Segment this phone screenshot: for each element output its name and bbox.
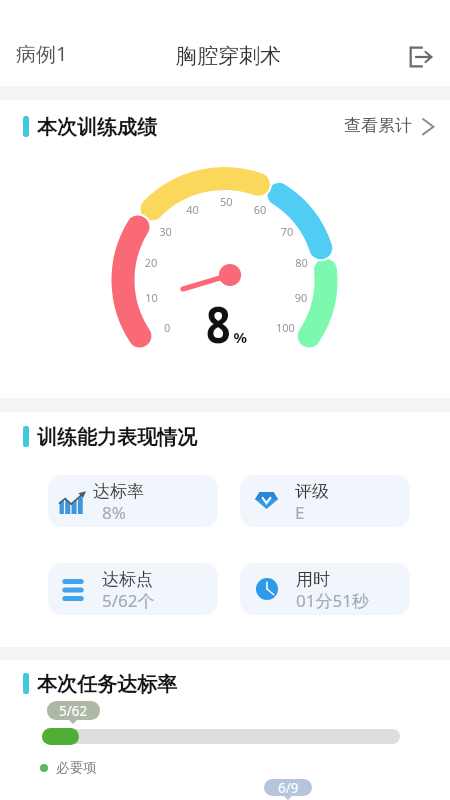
button[interactable]: 查看累计: [343, 113, 435, 139]
button[interactable]: 达标率: [48, 475, 218, 527]
staticText: 训练能力表现情况: [37, 425, 197, 450]
staticText: 5/62: [59, 702, 88, 720]
staticText: 胸腔穿刺术: [176, 43, 281, 69]
button[interactable]: 评级: [240, 475, 410, 527]
staticText: 01分51秒: [296, 589, 369, 612]
staticText: 评级: [295, 481, 329, 502]
staticText: 用时: [296, 569, 330, 590]
staticText: 病例1: [16, 40, 68, 67]
staticText: E: [295, 501, 305, 524]
staticText: 5/62个: [102, 589, 155, 612]
staticText: 查看累计: [344, 115, 412, 136]
staticText: 本次任务达标率: [37, 672, 177, 697]
staticText: 必要项: [56, 759, 97, 776]
staticText: 本次训练成绩: [37, 115, 157, 140]
staticText: 6/9: [278, 779, 299, 796]
staticText: 达标点: [102, 569, 153, 590]
button[interactable]: 达标点: [48, 563, 218, 615]
staticText: 8%: [102, 501, 126, 524]
button[interactable]: Exit: [403, 39, 439, 75]
staticText: 达标率: [93, 481, 144, 502]
button[interactable]: 用时: [240, 563, 410, 615]
